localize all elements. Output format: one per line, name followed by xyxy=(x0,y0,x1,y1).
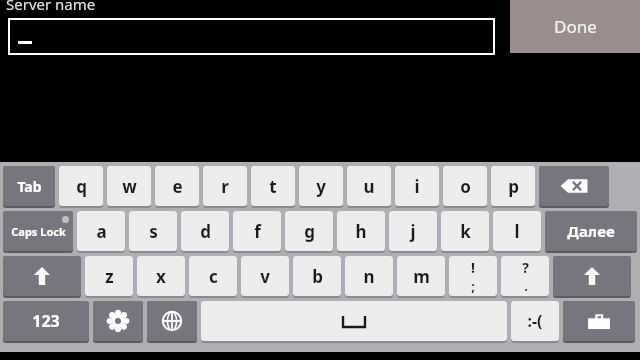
staticText: y xyxy=(316,175,326,198)
button[interactable]: p xyxy=(491,166,535,208)
staticText: h xyxy=(355,220,367,243)
button[interactable]: a xyxy=(77,211,125,253)
staticText: d xyxy=(200,220,211,243)
staticText: 123 xyxy=(32,310,60,332)
button[interactable]: q xyxy=(59,166,103,208)
button[interactable]: Settings xyxy=(93,301,143,343)
staticText: b xyxy=(312,265,323,288)
button[interactable]: r xyxy=(203,166,247,208)
staticText: w xyxy=(122,175,137,198)
button[interactable]: Далее xyxy=(545,211,637,253)
staticText: o xyxy=(460,175,471,198)
button[interactable]: :-( xyxy=(511,301,559,343)
staticText: p xyxy=(508,175,519,198)
button[interactable]: k xyxy=(441,211,489,253)
button[interactable]: d xyxy=(181,211,229,253)
button[interactable]: Tab xyxy=(3,166,55,208)
button[interactable]: Exclamation semicolon xyxy=(449,256,497,298)
button[interactable]: z xyxy=(85,256,133,298)
button[interactable]: Question period xyxy=(501,256,549,298)
button[interactable]: l xyxy=(493,211,541,253)
button[interactable]: b xyxy=(293,256,341,298)
button[interactable]: o xyxy=(443,166,487,208)
button[interactable]: w xyxy=(107,166,151,208)
staticText: Далее xyxy=(567,221,615,241)
staticText: f xyxy=(254,220,261,243)
staticText: Server name xyxy=(6,0,96,14)
button[interactable]: j xyxy=(389,211,437,253)
staticText: s xyxy=(149,220,158,243)
staticText: q xyxy=(76,175,87,198)
staticText: Caps Lock xyxy=(11,224,66,239)
button[interactable]: n xyxy=(345,256,393,298)
staticText: l xyxy=(514,220,520,243)
button[interactable]: Done xyxy=(510,0,640,53)
staticText: t xyxy=(269,175,277,198)
staticText: :-( xyxy=(527,310,543,332)
staticText: c xyxy=(209,265,218,288)
staticText: u xyxy=(363,175,375,198)
button[interactable] xyxy=(8,18,495,55)
button[interactable]: f xyxy=(233,211,281,253)
button[interactable]: Shift xyxy=(553,256,631,298)
staticText: Tab xyxy=(17,177,42,196)
button[interactable]: e xyxy=(155,166,199,208)
button[interactable]: 123 xyxy=(3,301,89,343)
staticText: n xyxy=(363,265,375,288)
button[interactable]: c xyxy=(189,256,237,298)
staticText: a xyxy=(96,220,107,243)
button[interactable]: s xyxy=(129,211,177,253)
staticText: z xyxy=(105,265,114,288)
staticText: m xyxy=(413,265,430,288)
staticText: ! xyxy=(471,258,475,277)
button[interactable]: Attachment xyxy=(563,301,635,343)
staticText: g xyxy=(304,220,315,243)
button[interactable]: Shift xyxy=(3,256,81,298)
button[interactable]: t xyxy=(251,166,295,208)
button[interactable]: Backspace xyxy=(539,166,609,208)
button[interactable]: Space xyxy=(201,301,507,343)
staticText: Done xyxy=(554,15,597,38)
staticText: ; xyxy=(471,277,475,295)
staticText: e xyxy=(172,175,183,198)
button[interactable]: g xyxy=(285,211,333,253)
staticText: . xyxy=(524,277,528,295)
staticText: ? xyxy=(522,258,529,277)
staticText: r xyxy=(221,175,229,198)
staticText: v xyxy=(260,265,270,288)
staticText: k xyxy=(460,220,471,243)
button[interactable]: m xyxy=(397,256,445,298)
button[interactable]: Caps Lock xyxy=(3,211,73,253)
staticText: i xyxy=(414,175,420,198)
button[interactable]: v xyxy=(241,256,289,298)
staticText: x xyxy=(156,265,166,288)
staticText: j xyxy=(410,220,416,243)
button[interactable]: Change language xyxy=(147,301,197,343)
button[interactable]: h xyxy=(337,211,385,253)
button[interactable]: i xyxy=(395,166,439,208)
button[interactable]: x xyxy=(137,256,185,298)
button[interactable]: u xyxy=(347,166,391,208)
button[interactable]: y xyxy=(299,166,343,208)
